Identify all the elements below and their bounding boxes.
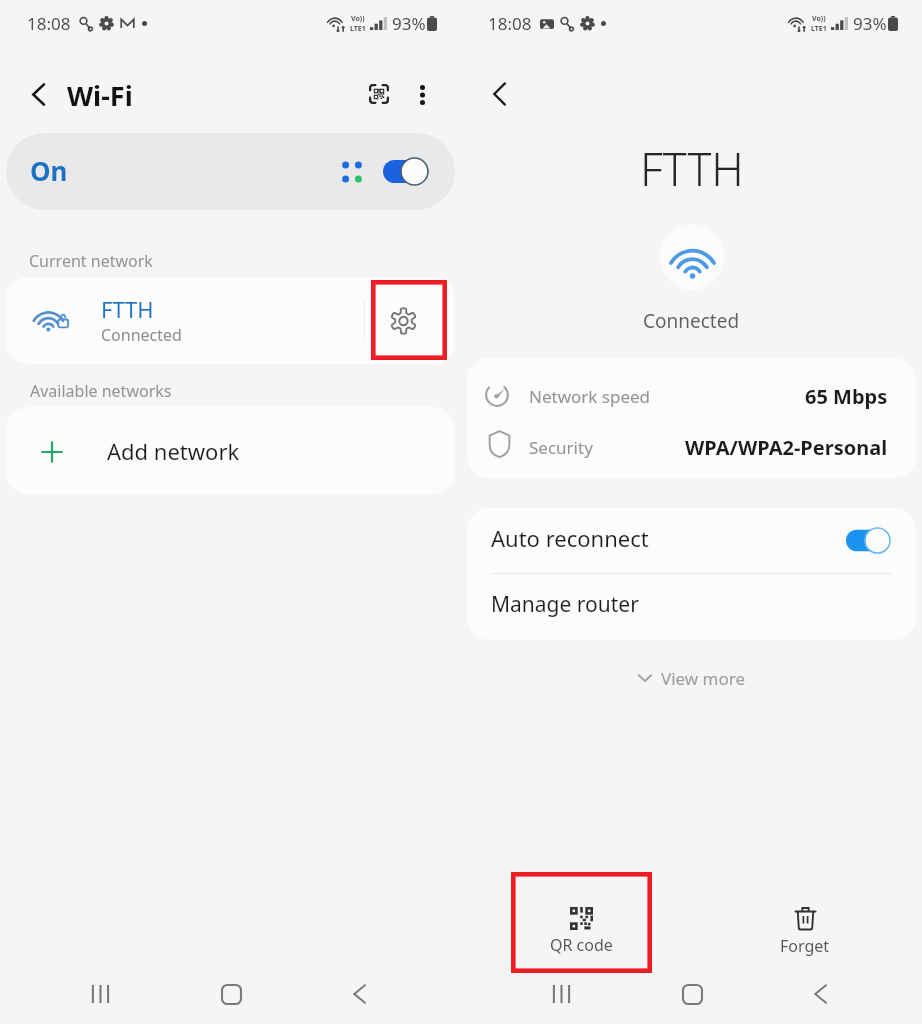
staticText: Auto reconnect bbox=[491, 523, 649, 553]
button[interactable]: FTTH bbox=[6, 277, 455, 364]
staticText: View more bbox=[661, 667, 746, 690]
staticText: Forget bbox=[780, 935, 830, 957]
staticText: QR code bbox=[550, 934, 613, 956]
staticText: Connected bbox=[643, 308, 740, 334]
button[interactable]: Manage router bbox=[467, 574, 916, 640]
button[interactable]: Network settings bbox=[376, 294, 430, 348]
staticText: 18:08 bbox=[27, 12, 71, 35]
button[interactable]: Add network bbox=[6, 407, 455, 494]
button[interactable]: Auto reconnect bbox=[467, 508, 916, 573]
staticText: Network speed bbox=[529, 385, 651, 408]
staticText: 93% bbox=[853, 12, 887, 35]
staticText: On bbox=[30, 153, 68, 188]
button[interactable]: Home bbox=[209, 972, 253, 1016]
button[interactable]: More options bbox=[400, 72, 444, 118]
staticText: Available networks bbox=[30, 380, 172, 402]
staticText: FTTH bbox=[640, 138, 744, 199]
staticText: Manage router bbox=[491, 590, 639, 619]
staticText: LTE1 bbox=[350, 24, 366, 34]
button[interactable]: Forget bbox=[745, 880, 865, 970]
button[interactable]: Auto reconnect toggle bbox=[846, 527, 891, 554]
staticText: Current network bbox=[29, 250, 153, 272]
button[interactable]: Wi-Fi toggle bbox=[383, 157, 429, 186]
staticText: 65 Mbps bbox=[805, 383, 888, 410]
staticText: Connected bbox=[101, 324, 182, 346]
button[interactable]: Back bbox=[337, 972, 381, 1016]
button[interactable]: Scan QR code bbox=[357, 72, 401, 116]
staticText: Add network bbox=[107, 436, 240, 466]
button[interactable]: Back bbox=[15, 71, 61, 117]
staticText: Vo)) bbox=[812, 14, 826, 24]
button[interactable]: Recent apps bbox=[539, 972, 583, 1016]
button[interactable]: Back bbox=[798, 972, 842, 1016]
button[interactable]: Back bbox=[476, 71, 522, 117]
button[interactable]: Home bbox=[670, 972, 714, 1016]
button[interactable]: QR code bbox=[521, 880, 641, 970]
staticText: Vo)) bbox=[351, 14, 365, 24]
staticText: 93% bbox=[392, 12, 426, 35]
button[interactable]: View more bbox=[461, 660, 922, 696]
staticText: LTE1 bbox=[811, 24, 827, 34]
button[interactable]: Recent apps bbox=[78, 972, 122, 1016]
button[interactable]: On bbox=[6, 133, 455, 210]
staticText: Security bbox=[529, 436, 593, 459]
staticText: 18:08 bbox=[488, 12, 532, 35]
staticText: WPA/WPA2-Personal bbox=[685, 434, 888, 461]
staticText: FTTH bbox=[101, 294, 154, 324]
staticText: Wi-Fi bbox=[67, 77, 133, 114]
